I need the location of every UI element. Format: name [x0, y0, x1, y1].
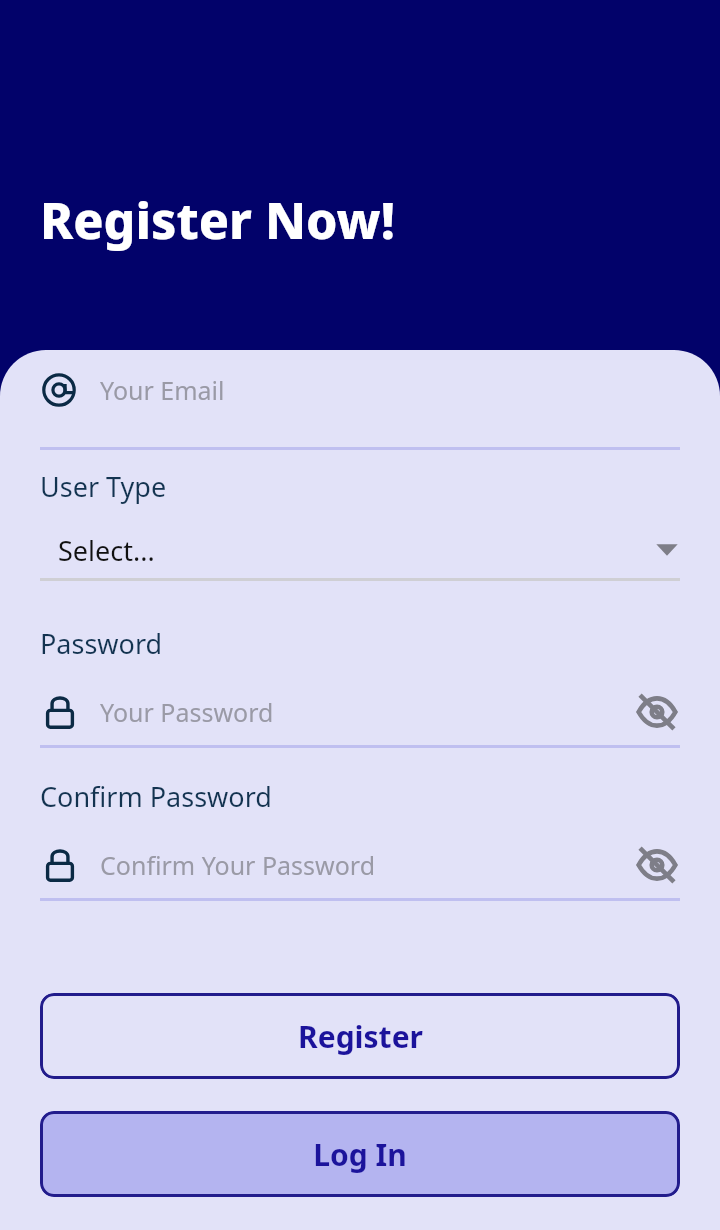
staticText: Your Password: [100, 695, 274, 729]
other: Open user type dropdown: [654, 537, 680, 563]
button[interactable]: Log In: [40, 1111, 680, 1197]
staticText: Confirm Your Password: [100, 848, 376, 882]
button[interactable]: Confirm Your Password: [40, 829, 680, 901]
staticText: User Type: [40, 468, 167, 505]
staticText: Log In: [313, 1134, 407, 1175]
staticText: Confirm Password: [40, 778, 272, 815]
staticText: Select...: [58, 532, 155, 569]
button[interactable]: Select...: [40, 519, 680, 581]
button[interactable]: Your Email: [40, 350, 680, 438]
staticText: Your Email: [100, 373, 225, 407]
other: Show password: [634, 689, 680, 735]
staticText: Register: [298, 1016, 423, 1057]
staticText: Register Now!: [40, 186, 395, 254]
button[interactable]: Register: [40, 993, 680, 1079]
other: Show password: [634, 842, 680, 888]
button[interactable]: Your Password: [40, 676, 680, 748]
staticText: Password: [40, 625, 163, 662]
